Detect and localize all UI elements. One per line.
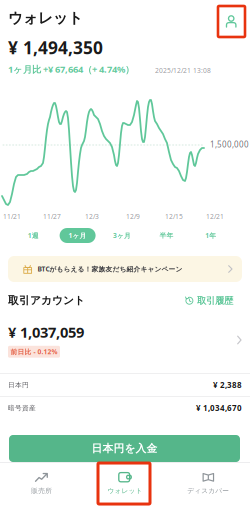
staticText: ディスカバー (187, 487, 229, 495)
staticText: 1ヶ月比 +¥ 67,664（+ 4.74%） (8, 63, 134, 75)
staticText: 12/21 (206, 212, 224, 221)
button[interactable]: 日本円を入金 (9, 435, 240, 462)
button[interactable]: アカウント (218, 6, 245, 37)
staticText: ¥ 2,388 (213, 380, 242, 390)
staticText: ¥ 1,034,670 (196, 403, 242, 413)
staticText: 日本円 (8, 381, 29, 389)
staticText: 12/3 (85, 212, 99, 221)
staticText: ¥ 1,494,350 (8, 36, 103, 59)
button[interactable]: 取引履歴 (183, 293, 235, 308)
staticText: 取引アカウント (8, 294, 85, 307)
staticText: 11/27 (43, 212, 61, 221)
button[interactable]: 半年 (144, 228, 189, 243)
staticText: 暗号資産 (8, 404, 36, 412)
staticText: 1ヶ月 (69, 231, 87, 240)
staticText: 11/21 (3, 212, 21, 221)
staticText: ¥ 1,037,059 (8, 322, 84, 342)
button[interactable]: 1ヶ月 (55, 228, 100, 243)
staticText: 取引履歴 (197, 295, 233, 306)
staticText: 日本円を入金 (91, 442, 157, 455)
staticText: 販売所 (31, 487, 52, 495)
staticText: 1週 (28, 231, 39, 240)
staticText: 前日比 - 0.12% (10, 347, 57, 356)
staticText: 12/15 (165, 212, 183, 221)
button[interactable]: 3ヶ月 (100, 228, 144, 243)
staticText: 3ヶ月 (113, 231, 131, 240)
button[interactable]: BTCがもらえる！家族友だち紹介キャンペーン (8, 256, 242, 282)
staticText: 2025/12/21 13:08 (155, 66, 211, 75)
staticText: ウォレット (8, 9, 83, 27)
staticText: ウォレット (107, 487, 142, 495)
button[interactable]: ディスカバー (167, 470, 250, 497)
button[interactable]: 1週 (11, 228, 55, 243)
staticText: 半年 (159, 231, 173, 240)
staticText: BTCがもらえる！家族友だち紹介キャンペーン (37, 265, 182, 273)
button[interactable]: 販売所 (0, 470, 83, 497)
button[interactable]: ¥ 1,037,059 (0, 318, 250, 362)
button[interactable]: ウォレット (83, 470, 167, 497)
staticText: 12/9 (126, 212, 140, 221)
button[interactable]: 1年 (189, 228, 233, 243)
staticText: 1,500,000 (210, 139, 249, 150)
staticText: 1年 (205, 231, 216, 240)
